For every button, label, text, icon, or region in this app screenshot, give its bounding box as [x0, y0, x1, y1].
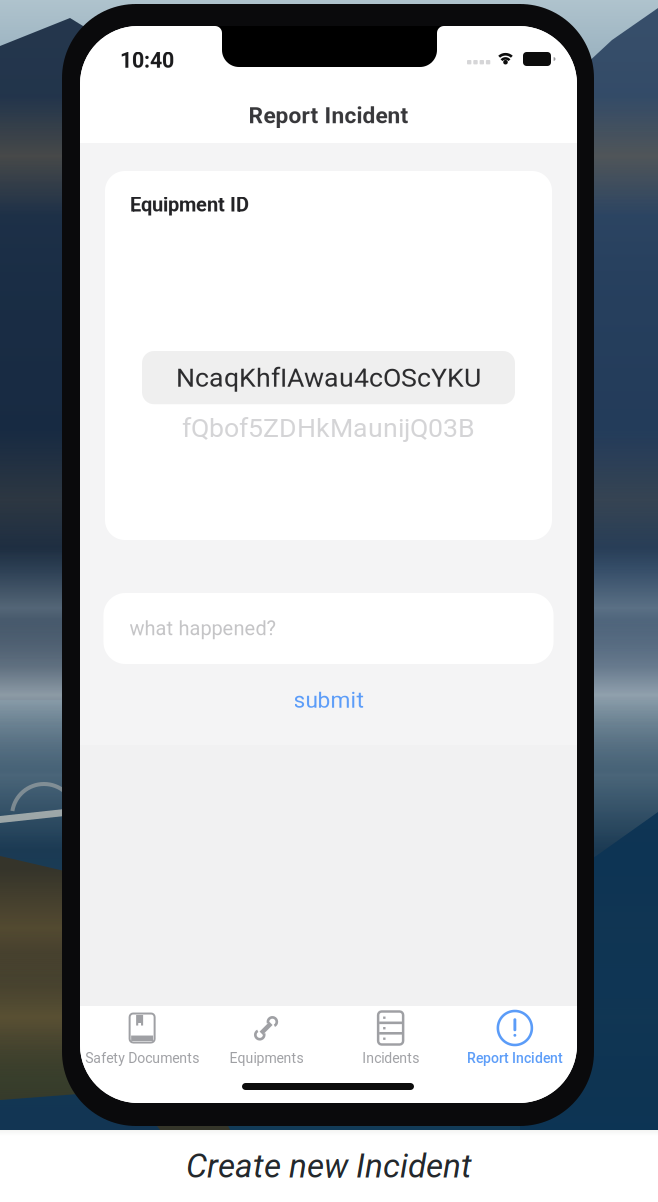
button[interactable]: Incidents: [328, 1006, 453, 1103]
button[interactable]: what happened?: [103, 593, 553, 664]
staticText: Incidents: [362, 1050, 419, 1066]
staticText: Safety Documents: [85, 1050, 199, 1066]
staticText: Report Incident: [248, 102, 408, 129]
button[interactable]: Safety Documents: [80, 1006, 204, 1103]
button[interactable]: Report Incident: [453, 1006, 577, 1103]
staticText: Report Incident: [467, 1050, 563, 1066]
button[interactable]: Equipments: [204, 1006, 328, 1103]
staticText: NcaqKhfIAwau4cOScYKU: [176, 362, 481, 393]
staticText: what happened?: [129, 617, 275, 640]
staticText: Equipments: [229, 1050, 303, 1066]
button[interactable]: submit: [253, 678, 403, 722]
staticText: Equipment ID: [130, 193, 249, 216]
staticText: 10:40: [120, 48, 174, 73]
staticText: submit: [293, 687, 363, 713]
staticText: fQbof5ZDHkMaunijQ03B: [182, 412, 475, 444]
staticText: Create new Incident: [186, 1146, 472, 1186]
